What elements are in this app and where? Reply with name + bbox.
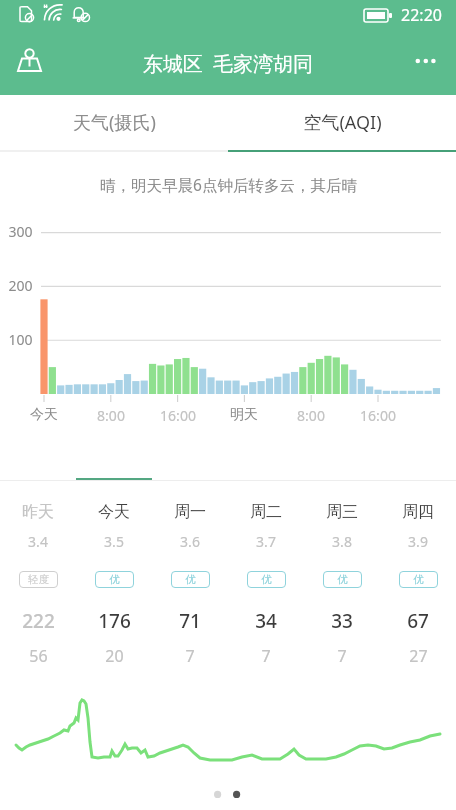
staticText: 20 [105,645,124,667]
staticText: 天气(摄氏) [73,110,156,135]
staticText: 周二 [250,502,282,522]
staticText: 222 [22,608,55,634]
staticText: 8:00 [286,406,336,425]
staticText: 3.5 [104,532,124,551]
button[interactable]: 周四 [380,502,456,667]
button[interactable]: 今天 [76,502,152,667]
staticText: 优 [261,573,272,586]
staticText: 16:00 [153,406,203,425]
staticText: 7 [261,645,271,667]
staticText: 晴，明天早晨6点钟后转多云，其后晴 [100,174,357,195]
staticText: 优 [413,573,424,586]
staticText: 56 [29,645,48,667]
staticText: 今天 [19,406,69,424]
staticText: 100 [8,330,33,349]
staticText: 昨天 [22,502,54,522]
staticText: 34 [255,608,277,634]
button[interactable]: 天气(摄氏) [0,95,228,150]
staticText: 轻度 [28,573,49,586]
staticText: 3.8 [332,532,352,551]
staticText: 周四 [402,502,434,522]
button[interactable]: 空气(AQI) [228,95,456,150]
staticText: 8:00 [86,406,136,425]
staticText: 33 [331,608,353,634]
staticText: 22:20 [401,4,442,26]
staticText: 27 [409,645,428,667]
staticText: 3.4 [28,532,48,551]
staticText: 200 [8,276,33,295]
button[interactable]: 昨天 [0,502,76,667]
staticText: 优 [109,573,120,586]
button[interactable]: More options [402,40,450,88]
button[interactable]: Location [6,40,54,88]
staticText: 300 [8,222,33,241]
button[interactable]: 周三 [304,502,380,667]
staticText: 3.6 [180,532,200,551]
staticText: 明天 [219,406,269,424]
staticText: 优 [185,573,196,586]
staticText: 3.9 [408,532,428,551]
staticText: 16:00 [353,406,403,425]
staticText: 今天 [98,502,130,522]
staticText: 7 [337,645,347,667]
staticText: 176 [98,608,131,634]
staticText: 71 [179,608,201,634]
staticText: 东城区 [143,52,203,77]
staticText: 7 [185,645,195,667]
staticText: 3.7 [256,532,276,551]
staticText: 周三 [326,502,358,522]
staticText: 空气(AQI) [303,110,382,135]
staticText: 优 [337,573,348,586]
staticText: 周一 [174,502,206,522]
button[interactable]: 周二 [228,502,304,667]
staticText: 67 [407,608,429,634]
staticText: 毛家湾胡同 [213,52,313,77]
button[interactable]: 周一 [152,502,228,667]
